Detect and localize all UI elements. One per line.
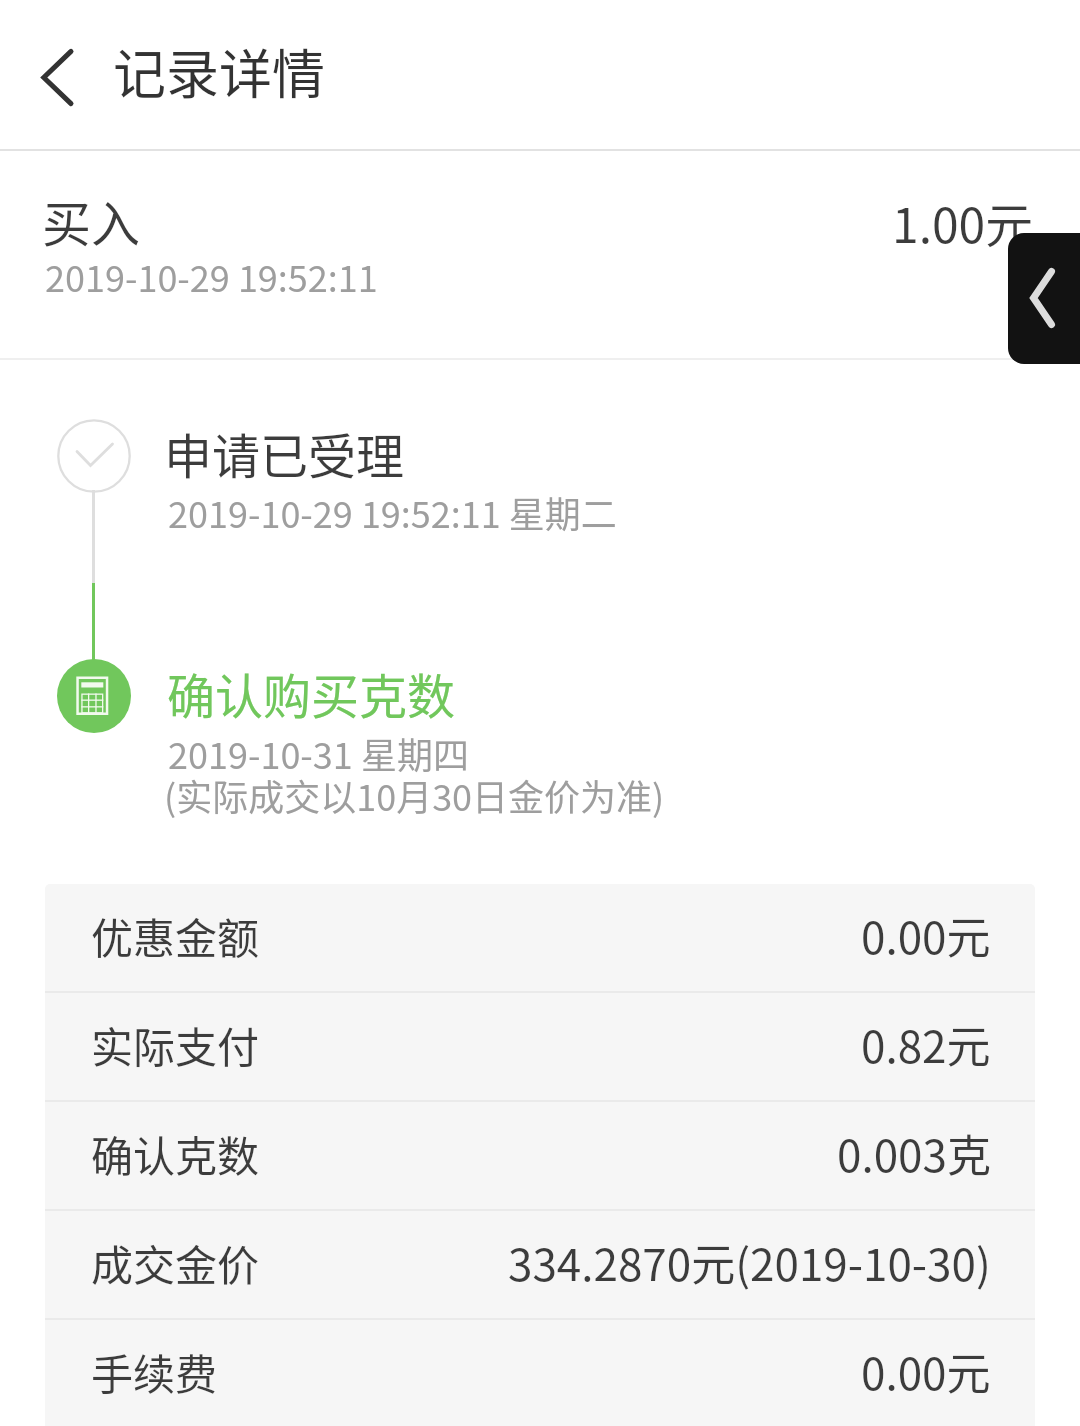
button[interactable]: 优惠金额 [45, 884, 1035, 993]
staticText: 记录详情 [113, 33, 325, 110]
staticText: 买入 [42, 185, 141, 256]
staticText: 2019-10-31 星期四 [168, 727, 469, 779]
staticText: 1.00元 [892, 187, 1034, 257]
button[interactable]: 买入 [0, 151, 1080, 358]
button[interactable]: 成交金价 [45, 1211, 1035, 1320]
staticText: 手续费 [91, 1341, 218, 1402]
staticText: 0.82元 [861, 1012, 991, 1076]
button[interactable]: 实际支付 [45, 993, 1035, 1102]
staticText: 确认购买克数 [167, 658, 456, 728]
staticText: 优惠金额 [91, 905, 260, 966]
staticText: 0.00元 [861, 1339, 991, 1403]
button[interactable]: 确认克数 [45, 1102, 1035, 1211]
staticText: 2019-10-29 19:52:11 [45, 250, 378, 302]
staticText: 0.003克 [837, 1121, 991, 1185]
button[interactable]: 手续费 [45, 1320, 1035, 1426]
staticText: 2019-10-29 19:52:11 星期二 [168, 486, 617, 538]
button[interactable]: Back [1008, 233, 1080, 364]
staticText: 确认克数 [91, 1123, 260, 1184]
button[interactable]: Back [20, 38, 96, 114]
staticText: 成交金价 [91, 1232, 260, 1293]
staticText: (实际成交以10月30日金价为准) [164, 769, 665, 821]
staticText: 0.00元 [861, 903, 991, 967]
staticText: 334.2870元(2019-10-30) [508, 1230, 991, 1294]
staticText: 实际支付 [91, 1014, 260, 1075]
staticText: 申请已受理 [164, 418, 405, 488]
